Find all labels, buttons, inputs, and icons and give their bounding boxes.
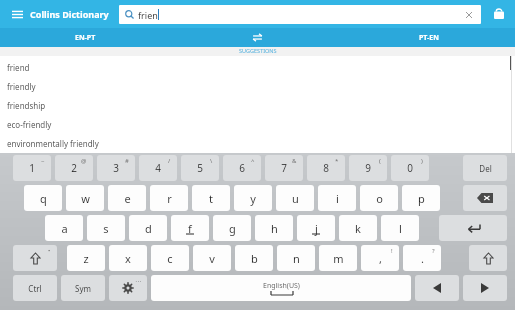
- button[interactable]: .: [403, 245, 441, 271]
- button[interactable]: Right: [463, 275, 507, 301]
- button[interactable]: Shift: [13, 245, 57, 271]
- button[interactable]: y: [234, 185, 272, 211]
- button[interactable]: q: [24, 185, 62, 211]
- staticText: s: [103, 221, 109, 236]
- staticText: friendly: [7, 81, 36, 92]
- staticText: y: [250, 191, 256, 206]
- staticText: 9: [365, 161, 371, 175]
- staticText: n: [293, 251, 300, 266]
- staticText: 2: [71, 161, 77, 175]
- button[interactable]: a: [45, 215, 83, 241]
- staticText: r: [167, 191, 172, 206]
- button[interactable]: h: [255, 215, 293, 241]
- staticText: u: [292, 191, 299, 206]
- button[interactable]: m: [319, 245, 357, 271]
- staticText: .: [421, 251, 424, 266]
- button[interactable]: p: [402, 185, 440, 211]
- button[interactable]: o: [360, 185, 398, 211]
- button[interactable]: Settings: [109, 275, 147, 301]
- button[interactable]: environmentally friendly: [7, 134, 515, 153]
- staticText: j: [315, 221, 318, 236]
- staticText: h: [271, 221, 278, 236]
- staticText: /: [168, 157, 171, 165]
- staticText: d: [145, 221, 152, 236]
- button[interactable]: g: [213, 215, 251, 241]
- staticText: l: [399, 221, 402, 236]
- staticText: x: [125, 251, 131, 266]
- button[interactable]: 0: [391, 155, 429, 181]
- button[interactable]: friendship: [7, 96, 515, 115]
- staticText: 1: [29, 161, 35, 175]
- button[interactable]: Clear: [463, 9, 475, 21]
- button[interactable]: Shift: [469, 245, 507, 271]
- staticText: ⋯: [135, 277, 141, 284]
- staticText: Collins Dictionary: [30, 8, 109, 20]
- button[interactable]: 4: [139, 155, 177, 181]
- button[interactable]: v: [193, 245, 231, 271]
- button[interactable]: friendly: [7, 77, 515, 96]
- button[interactable]: 2: [55, 155, 93, 181]
- button[interactable]: i: [318, 185, 356, 211]
- button[interactable]: t: [192, 185, 230, 211]
- button[interactable]: 3: [97, 155, 135, 181]
- button[interactable]: Menu: [6, 3, 28, 25]
- button[interactable]: 5: [181, 155, 219, 181]
- staticText: (: [379, 157, 381, 165]
- staticText: o: [376, 191, 383, 206]
- staticText: frien: [138, 9, 158, 21]
- staticText: EN-PT: [75, 33, 96, 43]
- staticText: !: [391, 247, 393, 255]
- button[interactable]: eco-friendly: [7, 115, 515, 134]
- staticText: friend: [7, 62, 30, 73]
- button[interactable]: Sym: [61, 275, 105, 301]
- button[interactable]: 1: [13, 155, 51, 181]
- button[interactable]: w: [66, 185, 104, 211]
- staticText: 4: [155, 161, 161, 175]
- staticText: i: [336, 191, 339, 206]
- button[interactable]: r: [150, 185, 188, 211]
- staticText: Sym: [75, 283, 91, 294]
- button[interactable]: 8: [307, 155, 345, 181]
- button[interactable]: c: [151, 245, 189, 271]
- staticText: English(US): [263, 281, 300, 291]
- button[interactable]: x: [109, 245, 147, 271]
- button[interactable]: 7: [265, 155, 303, 181]
- button[interactable]: Store: [489, 4, 509, 24]
- button[interactable]: Ctrl: [13, 275, 57, 301]
- button[interactable]: frien: [119, 5, 481, 24]
- button[interactable]: Left: [415, 275, 459, 301]
- button[interactable]: u: [276, 185, 314, 211]
- staticText: 3: [113, 161, 119, 175]
- staticText: SUGGESTIONS: [239, 47, 277, 54]
- button[interactable]: Backspace: [463, 185, 507, 211]
- button[interactable]: Del: [463, 155, 507, 181]
- staticText: ~: [41, 157, 45, 165]
- button[interactable]: d: [129, 215, 167, 241]
- staticText: friendship: [7, 100, 46, 111]
- button[interactable]: e: [108, 185, 146, 211]
- staticText: \: [210, 157, 213, 165]
- button[interactable]: l: [381, 215, 419, 241]
- button[interactable]: s: [87, 215, 125, 241]
- staticText: environmentally friendly: [7, 138, 99, 149]
- staticText: PT-EN: [419, 33, 439, 43]
- button[interactable]: Enter: [439, 215, 507, 241]
- button[interactable]: z: [67, 245, 105, 271]
- staticText: w: [81, 191, 90, 206]
- button[interactable]: b: [235, 245, 273, 271]
- staticText: ^: [251, 157, 255, 165]
- button[interactable]: ,: [361, 245, 399, 271]
- button[interactable]: 6: [223, 155, 261, 181]
- button[interactable]: PT-EN: [343, 28, 515, 47]
- button[interactable]: k: [339, 215, 377, 241]
- staticText: m: [333, 251, 344, 266]
- button[interactable]: Swap languages: [171, 28, 343, 47]
- button[interactable]: 9: [349, 155, 387, 181]
- button[interactable]: f: [171, 215, 209, 241]
- button[interactable]: j: [297, 215, 335, 241]
- button[interactable]: EN-PT: [0, 28, 171, 47]
- button[interactable]: Space: [151, 275, 411, 301]
- button[interactable]: n: [277, 245, 315, 271]
- button[interactable]: friend: [7, 58, 515, 77]
- staticText: a: [61, 221, 68, 236]
